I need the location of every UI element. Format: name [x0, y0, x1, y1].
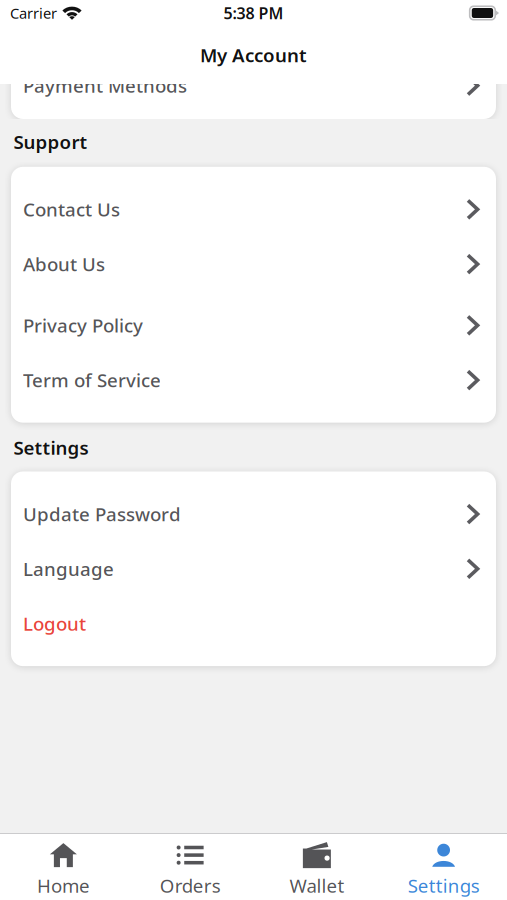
staticText: Settings: [13, 435, 88, 460]
staticText: Settings: [408, 873, 480, 898]
button[interactable]: Term of Service: [11, 353, 496, 407]
staticText: Contact Us: [23, 197, 120, 222]
staticText: Language: [23, 556, 114, 581]
staticText: Logout: [23, 611, 86, 636]
staticText: Update Password: [23, 502, 181, 526]
staticText: Carrier: [10, 3, 57, 23]
button[interactable]: Home: [0, 831, 127, 900]
button[interactable]: Language: [11, 541, 496, 596]
button[interactable]: About Us: [11, 237, 496, 291]
staticText: Orders: [160, 873, 221, 898]
staticText: Payment Methods: [23, 73, 187, 98]
staticText: Home: [37, 873, 90, 898]
staticText: 5:38 PM: [223, 2, 283, 24]
staticText: My Account: [200, 43, 307, 67]
button[interactable]: Update Password: [11, 487, 496, 541]
staticText: About Us: [23, 252, 105, 276]
button[interactable]: Payment Methods: [11, 58, 496, 113]
staticText: Privacy Policy: [23, 313, 143, 338]
button[interactable]: Orders: [127, 831, 254, 900]
button[interactable]: Privacy Policy: [11, 298, 496, 353]
staticText: Support: [13, 129, 87, 154]
button[interactable]: Settings: [380, 831, 507, 900]
button[interactable]: Wallet: [253, 831, 380, 900]
staticText: Term of Service: [23, 368, 161, 392]
staticText: Wallet: [289, 873, 344, 898]
button[interactable]: Logout: [11, 596, 496, 651]
button[interactable]: Contact Us: [11, 182, 496, 237]
